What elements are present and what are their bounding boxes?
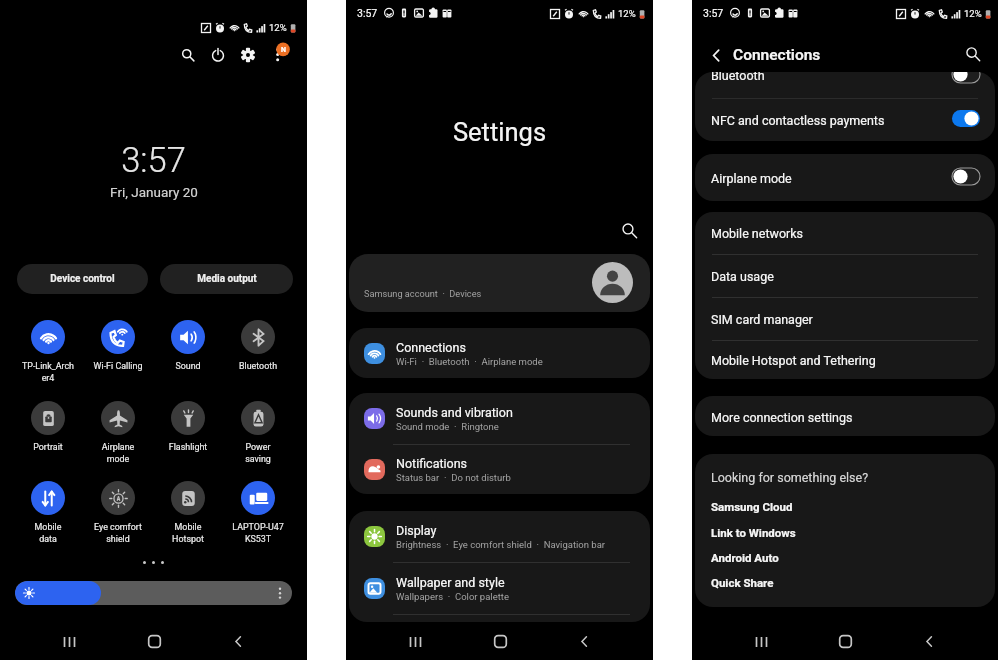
button[interactable]: Back <box>223 626 253 656</box>
staticText: Wi-Fi Calling <box>83 361 153 371</box>
button[interactable]: Back <box>708 47 725 64</box>
staticText: Airplane mode <box>711 171 792 186</box>
button[interactable]: Android Auto <box>711 551 779 564</box>
button[interactable]: Mobile data <box>13 481 83 544</box>
button[interactable]: Search <box>965 46 981 62</box>
staticText: Settings <box>346 117 653 147</box>
staticText: Mobile Hotspot <box>153 522 223 544</box>
staticText: Looking for something else? <box>711 470 869 485</box>
staticText: 3:57 <box>703 7 724 19</box>
button[interactable]: Settings <box>241 48 255 62</box>
button[interactable]: Search <box>621 222 638 239</box>
staticText: Wi-Fi · Bluetooth · Airplane mode <box>396 356 543 367</box>
button[interactable]: Quick Share <box>711 576 774 589</box>
button[interactable]: LAPTOP-U47 KS53T <box>223 481 293 544</box>
staticText: N <box>281 46 286 54</box>
button[interactable]: TP-Link_Arch er4 <box>13 320 83 383</box>
button[interactable]: Eye comfort shield <box>83 481 153 544</box>
staticText: Sounds and vibration <box>396 405 513 420</box>
staticText: SIM card manager <box>711 312 813 327</box>
staticText: 12% <box>618 8 636 19</box>
staticText: LAPTOP-U47 KS53T <box>223 522 293 544</box>
staticText: NFC and contactless payments <box>711 113 885 128</box>
button[interactable]: Link to Windows <box>711 526 796 539</box>
staticText: Portrait <box>13 442 83 452</box>
staticText: Mobile networks <box>711 226 804 241</box>
staticText: Eye comfort shield <box>83 522 153 544</box>
staticText: More connection settings <box>711 410 853 425</box>
button[interactable]: Toggle <box>952 168 980 185</box>
staticText: Data usage <box>711 269 774 284</box>
staticText: Brightness · Eye comfort shield · Naviga… <box>396 539 606 550</box>
button[interactable]: Mobile Hotspot <box>153 481 223 544</box>
button[interactable]: Recents <box>746 626 776 656</box>
staticText: TP-Link_Arch er4 <box>13 361 83 383</box>
button[interactable]: Recents <box>400 626 430 656</box>
button[interactable]: Recents <box>54 626 84 656</box>
staticText: Connections <box>396 340 466 355</box>
button[interactable]: Home <box>139 626 169 656</box>
button[interactable]: Connections <box>733 46 821 64</box>
button[interactable]: SIM card manager <box>695 298 995 340</box>
staticText: Power saving <box>223 442 293 464</box>
staticText: Notifications <box>396 456 468 471</box>
button[interactable]: Power <box>211 48 225 62</box>
button[interactable]: More options <box>271 44 289 62</box>
button[interactable]: Connections <box>349 328 650 378</box>
button[interactable]: Wallpaper and style <box>349 563 650 614</box>
button[interactable]: Sounds and vibration <box>349 393 650 444</box>
button[interactable]: More connection settings <box>695 396 995 436</box>
button[interactable]: Portrait <box>13 401 83 452</box>
button[interactable]: Power saving <box>223 401 293 464</box>
button[interactable]: Toggle <box>952 110 980 127</box>
button[interactable]: Samsung account · Devices <box>349 254 650 312</box>
button[interactable]: Mobile networks <box>695 212 995 254</box>
staticText: Wallpapers · Color palette <box>396 591 509 602</box>
button[interactable]: Brightness <box>15 581 292 605</box>
staticText: Mobile Hotspot and Tethering <box>711 353 876 368</box>
button[interactable]: Back <box>569 626 599 656</box>
staticText: Media output <box>197 273 257 285</box>
staticText: Status bar · Do not disturb <box>396 472 511 483</box>
button[interactable]: Home <box>485 626 515 656</box>
button[interactable]: Display <box>349 511 650 562</box>
button[interactable]: Home <box>830 626 860 656</box>
button[interactable]: Mobile Hotspot and Tethering <box>695 341 995 379</box>
button[interactable]: Airplane mode <box>83 401 153 464</box>
staticText: Flashlight <box>153 442 223 452</box>
staticText: Bluetooth <box>711 72 765 83</box>
button[interactable]: Flashlight <box>153 401 223 452</box>
staticText: Fri, January 20 <box>110 184 198 200</box>
staticText: 3:57 <box>357 7 378 19</box>
button[interactable]: Toggle <box>952 72 980 83</box>
button[interactable]: Sound <box>153 320 223 371</box>
staticText: Display <box>396 523 437 538</box>
staticText: Sound <box>153 361 223 371</box>
button[interactable]: Media output <box>160 264 293 294</box>
staticText: 3:57 <box>121 140 186 180</box>
staticText: Samsung account · Devices <box>364 288 482 299</box>
button[interactable]: Data usage <box>695 255 995 297</box>
button[interactable]: Samsung Cloud <box>711 500 793 513</box>
button[interactable]: Back <box>914 626 944 656</box>
staticText: Airplane mode <box>83 442 153 464</box>
button[interactable]: Device control <box>17 264 148 294</box>
staticText: 12% <box>964 8 982 19</box>
staticText: Mobile data <box>13 522 83 544</box>
button[interactable]: Search <box>181 48 195 62</box>
staticText: 12% <box>269 22 287 33</box>
staticText: Wallpaper and style <box>396 575 505 590</box>
staticText: Bluetooth <box>223 361 293 371</box>
button[interactable]: Notifications <box>349 445 650 494</box>
button[interactable]: Bluetooth <box>223 320 293 371</box>
staticText: Device control <box>50 273 115 285</box>
staticText: Sound mode · Ringtone <box>396 421 499 432</box>
button[interactable]: Wi-Fi Calling <box>83 320 153 371</box>
